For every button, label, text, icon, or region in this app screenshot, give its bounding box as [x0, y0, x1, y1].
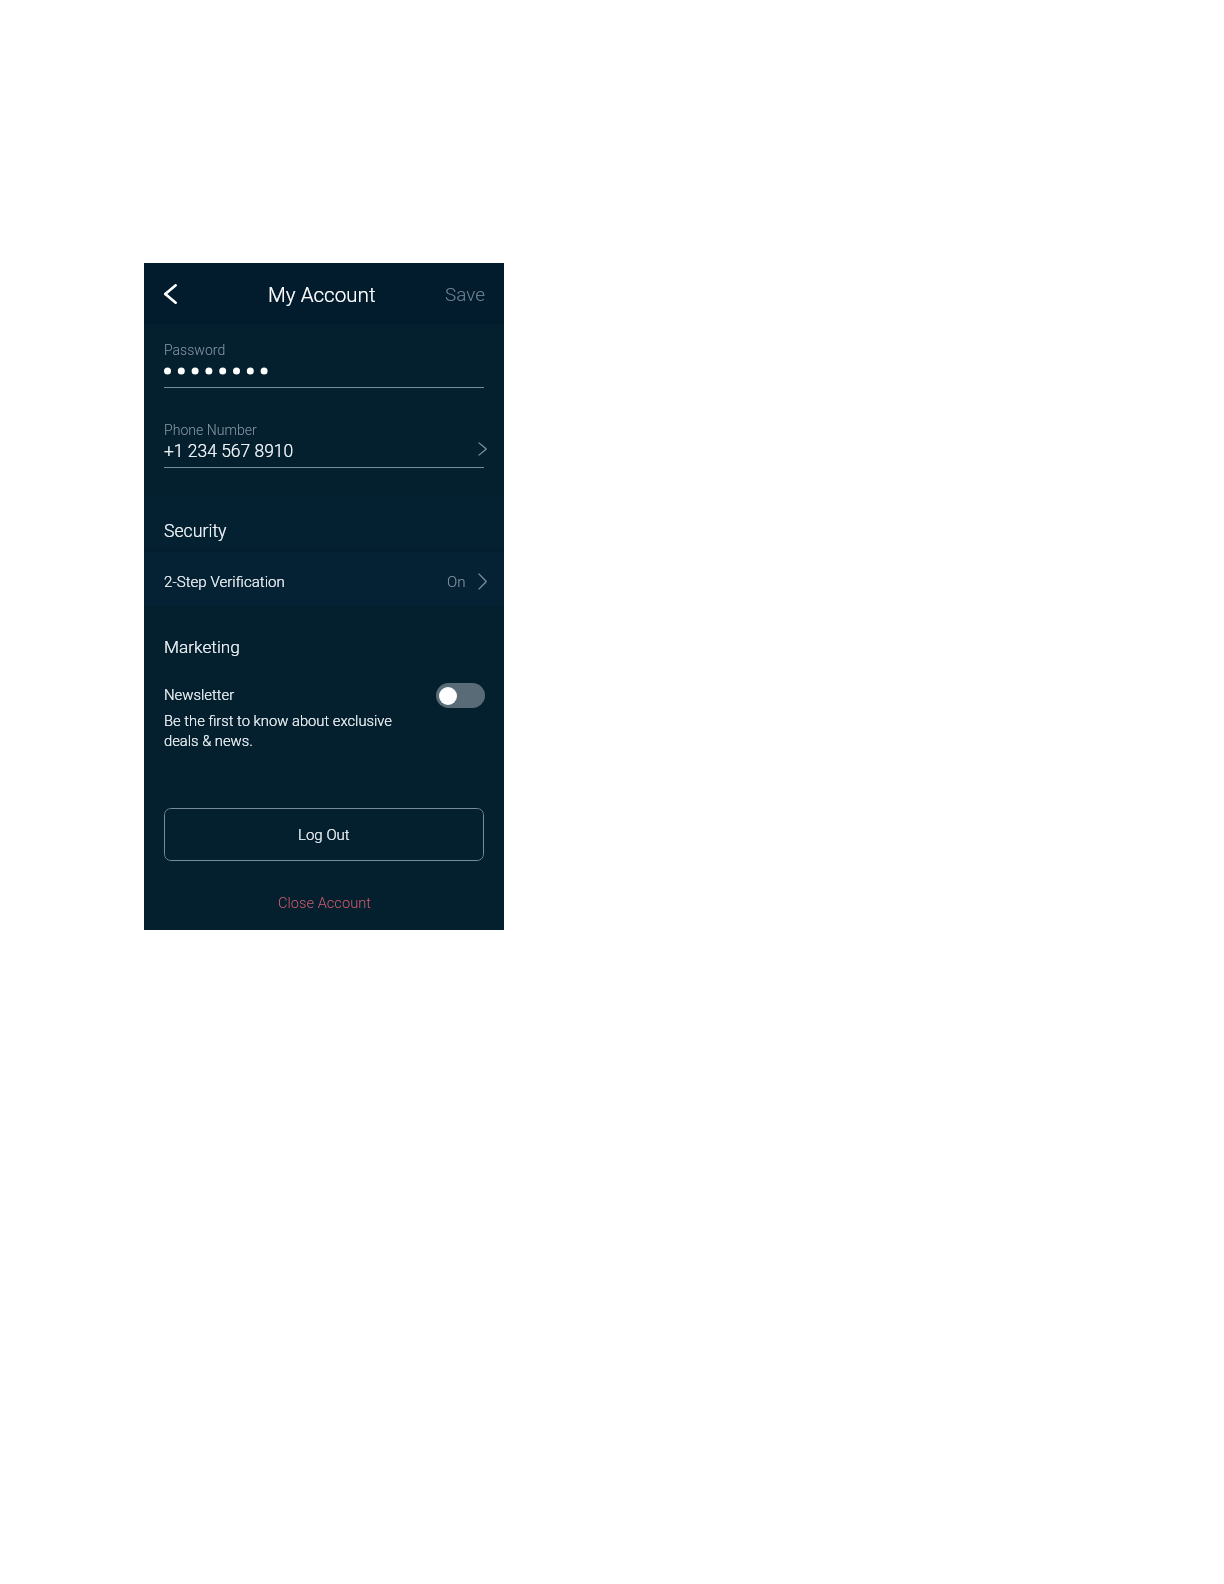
staticText: 2-Step Verification [164, 573, 285, 591]
button[interactable]: Phone Number [164, 420, 484, 468]
staticText: Security [164, 521, 227, 542]
button[interactable]: Password [164, 340, 484, 388]
staticText: Newsletter [164, 686, 235, 703]
button[interactable]: Close Account [264, 885, 385, 920]
staticText: Save [445, 283, 485, 305]
staticText: Be the first to know about exclusive dea… [164, 712, 392, 750]
button[interactable]: Back [150, 272, 190, 312]
staticText: Password [164, 342, 226, 358]
button[interactable]: Save [435, 275, 494, 315]
button[interactable]: Newsletter toggle [436, 683, 485, 708]
button[interactable]: 2-Step Verification [144, 561, 504, 607]
staticText: Phone Number [164, 422, 257, 439]
staticText: Log Out [298, 826, 350, 844]
button[interactable]: Log Out [164, 808, 484, 861]
staticText: Marketing [164, 637, 240, 657]
staticText: On [447, 573, 466, 591]
staticText: My Account [268, 283, 376, 307]
staticText: Close Account [278, 894, 371, 911]
staticText: +1 234 567 8910 [164, 441, 294, 461]
